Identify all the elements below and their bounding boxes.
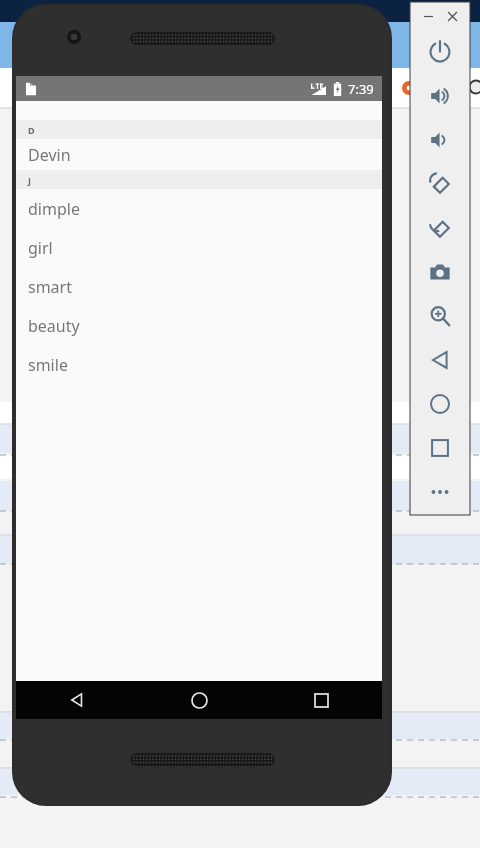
staticText: girl (28, 237, 53, 259)
button[interactable]: Close (444, 8, 460, 24)
button[interactable]: dimple (16, 189, 382, 228)
staticText: dimple (28, 198, 80, 220)
staticText: J (28, 174, 31, 186)
button[interactable]: D (16, 120, 382, 139)
button[interactable]: Recents (260, 681, 382, 719)
staticText: D (28, 124, 35, 136)
button[interactable]: Home (138, 681, 260, 719)
button[interactable]: More (410, 470, 470, 514)
staticText: 7:39 (348, 80, 374, 98)
button[interactable]: Devin (16, 139, 382, 170)
button[interactable]: Overview (410, 426, 470, 470)
button[interactable]: smile (16, 345, 382, 384)
staticText: smart (28, 276, 72, 298)
button[interactable]: Rotate left (410, 162, 470, 206)
button[interactable]: Volume down (410, 118, 470, 162)
button[interactable]: girl (16, 228, 382, 267)
button[interactable]: Power (410, 30, 470, 74)
button[interactable]: Minimize (420, 8, 436, 24)
staticText: Devin (28, 144, 71, 166)
button[interactable]: J (16, 170, 382, 189)
button[interactable]: Rotate right (410, 206, 470, 250)
staticText: smile (28, 354, 68, 376)
button[interactable]: Take screenshot (410, 250, 470, 294)
button[interactable]: Home (410, 382, 470, 426)
button[interactable]: Back (16, 681, 138, 719)
button[interactable]: smart (16, 267, 382, 306)
button[interactable]: Back (410, 338, 470, 382)
staticText: beauty (28, 315, 80, 337)
button[interactable]: Volume up (410, 74, 470, 118)
button[interactable]: Zoom (410, 294, 470, 338)
button[interactable]: beauty (16, 306, 382, 345)
